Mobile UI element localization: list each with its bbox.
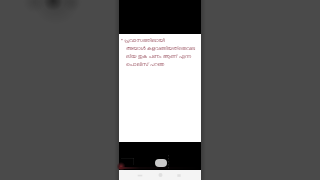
- button[interactable]: Play / pause: [155, 159, 167, 167]
- staticText: • പ്രവാസത്തിലായി: [121, 37, 165, 44]
- staticText: പൊലീസ് പറഞ: [126, 61, 165, 68]
- staticText: അയാൾ കളവങ്ങിയത്ഒരുവല: [126, 45, 196, 52]
- button[interactable]: Home: [152, 170, 168, 180]
- staticText: ലിയ തുക പണം ആണ് എന്ന: [126, 53, 192, 60]
- button[interactable]: Back: [132, 170, 148, 180]
- button[interactable]: Recent apps: [171, 170, 187, 180]
